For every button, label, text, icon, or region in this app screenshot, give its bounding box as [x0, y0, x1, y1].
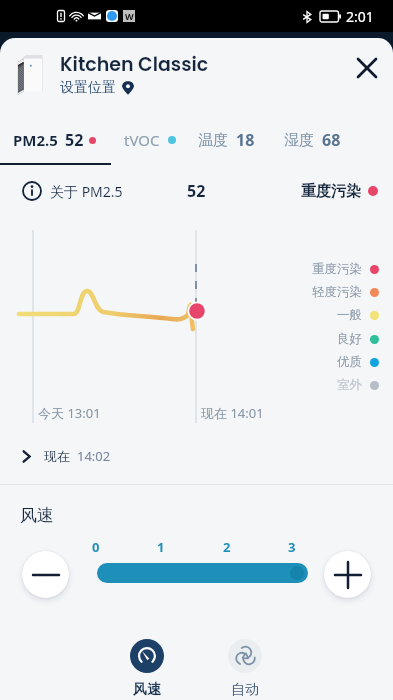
staticText: 68: [322, 129, 341, 151]
staticText: 3: [288, 538, 296, 556]
button[interactable]: 温度: [198, 127, 255, 153]
button[interactable]: 关于 PM2.5: [22, 177, 123, 205]
staticText: 0: [92, 538, 100, 556]
staticText: 现在: [44, 448, 70, 464]
button[interactable]: 现在: [0, 442, 111, 470]
staticText: 风速: [133, 681, 161, 699]
staticText: 设置位置: [60, 79, 116, 97]
button[interactable]: Increase speed: [324, 551, 371, 598]
staticText: 一般: [337, 307, 362, 323]
staticText: 2:01: [346, 7, 374, 26]
staticText: PM2.5: [13, 130, 58, 150]
button[interactable]: [97, 563, 308, 583]
staticText: 重度污染: [301, 182, 361, 201]
button[interactable]: PM2.5: [13, 127, 96, 153]
staticText: 温度: [198, 131, 228, 150]
staticText: 2: [223, 538, 231, 556]
staticText: 今天 13:01: [38, 404, 101, 422]
staticText: 湿度: [284, 131, 314, 150]
button[interactable]: 自动: [212, 632, 278, 699]
button[interactable]: Decrease speed: [22, 551, 69, 598]
button[interactable]: 湿度: [284, 127, 341, 153]
button[interactable]: Close: [346, 47, 388, 89]
staticText: 14:02: [77, 447, 111, 465]
staticText: 室外: [337, 377, 362, 393]
staticText: 18: [236, 129, 255, 151]
button[interactable]: 风速: [114, 632, 180, 699]
staticText: 优质: [337, 354, 362, 370]
staticText: tVOC: [124, 130, 160, 150]
staticText: 1: [157, 538, 165, 556]
staticText: 良好: [337, 331, 362, 347]
staticText: 重度污染: [312, 261, 362, 277]
staticText: 关于 PM2.5: [50, 182, 123, 201]
staticText: 轻度污染: [312, 284, 362, 300]
staticText: 风速: [20, 505, 54, 526]
staticText: 自动: [231, 681, 259, 699]
staticText: W: [125, 10, 134, 22]
staticText: 52: [65, 129, 84, 151]
button[interactable]: tVOC: [124, 127, 176, 153]
staticText: 52: [187, 180, 206, 202]
staticText: Kitchen Classic: [60, 51, 209, 78]
staticText: 现在 14:01: [201, 404, 264, 422]
